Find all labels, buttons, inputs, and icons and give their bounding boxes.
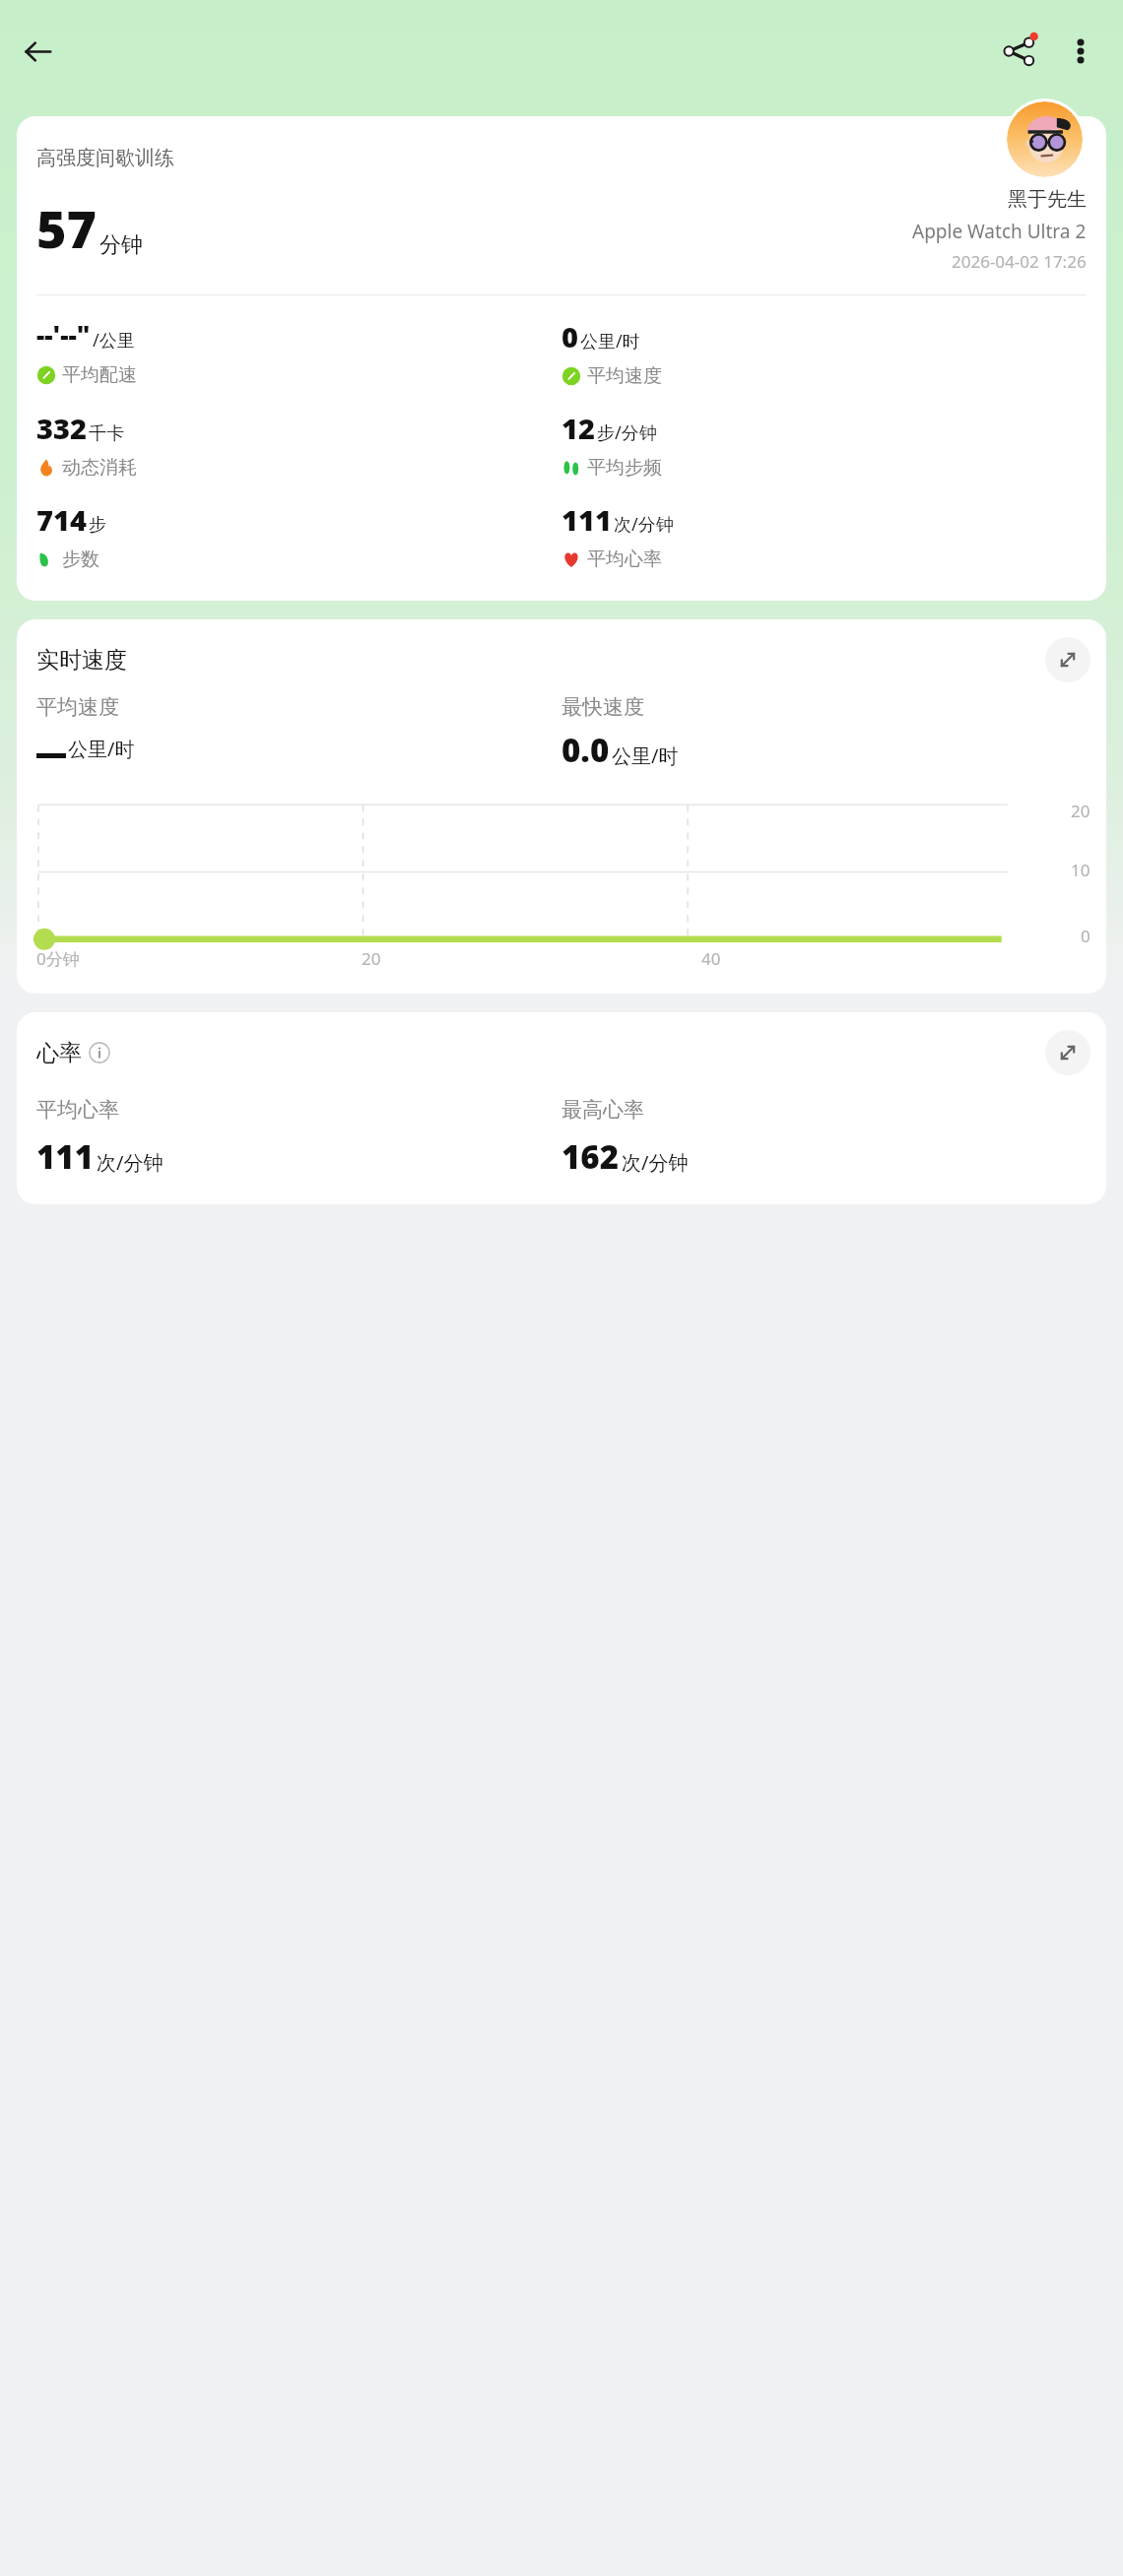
staticText: 分钟 (99, 231, 143, 259)
button[interactable]: 实时速度 (17, 619, 1106, 994)
button[interactable]: Back (10, 24, 65, 79)
staticText: 40 (701, 947, 721, 970)
staticText: 162 (561, 1134, 620, 1179)
staticText: 20 (362, 947, 381, 970)
staticText: 心率 (36, 1039, 82, 1067)
staticText: 平均心率 (36, 1097, 119, 1123)
button[interactable]: 111 (561, 500, 1087, 571)
staticText: 0 (561, 317, 578, 355)
button[interactable]: Heart rate info (89, 1042, 110, 1063)
button[interactable]: 12 (561, 409, 1087, 480)
staticText: 次/分钟 (97, 1149, 164, 1176)
staticText: 最高心率 (561, 1097, 644, 1123)
staticText: 0.0 (561, 728, 610, 772)
staticText: 714 (36, 500, 87, 539)
button[interactable]: 最高心率 (561, 1097, 1087, 1179)
button[interactable]: More options (1052, 23, 1109, 80)
staticText: 平均配速 (62, 363, 137, 387)
staticText: 10 (1071, 859, 1090, 881)
staticText: 0分钟 (36, 947, 80, 970)
staticText: 公里/时 (612, 742, 679, 769)
staticText: 0 (1081, 925, 1090, 947)
staticText: 公里/时 (68, 736, 135, 762)
button[interactable]: 0 (561, 317, 1087, 388)
button[interactable]: Expand (1045, 1030, 1090, 1075)
staticText: Apple Watch Ultra 2 (912, 219, 1087, 244)
staticText: 57 (36, 193, 97, 263)
staticText: 平均心率 (587, 547, 662, 571)
staticText: 次/分钟 (622, 1149, 689, 1176)
button[interactable]: --'--" (36, 317, 561, 387)
staticText: 332 (36, 409, 87, 447)
button[interactable]: 332 (36, 409, 561, 480)
staticText: 12 (561, 409, 595, 447)
staticText: 步 (89, 514, 106, 537)
staticText: /公里 (93, 328, 135, 353)
button[interactable]: 高强度间歇训练 (17, 116, 1106, 601)
staticText: 最快速度 (561, 694, 644, 720)
staticText: 步/分钟 (597, 420, 657, 445)
staticText: 111 (36, 1134, 95, 1179)
staticText: 平均速度 (587, 364, 662, 388)
staticText: 实时速度 (36, 646, 127, 675)
button[interactable]: Profile avatar (1007, 101, 1083, 177)
staticText: 次/分钟 (614, 512, 674, 537)
staticText: 黑于先生 (1008, 187, 1087, 212)
staticText: 111 (561, 500, 612, 539)
button[interactable]: Expand (1045, 637, 1090, 682)
staticText: 动态消耗 (62, 456, 137, 480)
button[interactable]: Share (991, 23, 1048, 80)
staticText: 2026-04-02 17:26 (952, 250, 1087, 273)
button[interactable]: 平均心率 (36, 1097, 561, 1179)
staticText: 平均步频 (587, 456, 662, 480)
staticText: 20 (1071, 800, 1090, 822)
staticText: 步数 (62, 547, 99, 571)
staticText: 千卡 (89, 422, 124, 445)
button[interactable]: 心率 (17, 1012, 1106, 1204)
staticText: --'--" (36, 317, 91, 352)
staticText: 平均速度 (36, 694, 119, 720)
staticText: 公里/时 (580, 329, 640, 354)
button[interactable]: 714 (36, 500, 561, 571)
staticText: 高强度间歇训练 (36, 146, 174, 170)
